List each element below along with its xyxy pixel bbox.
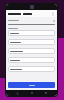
button[interactable]: Info [8, 19, 55, 22]
button[interactable]: Info [52, 19, 55, 22]
button[interactable] [8, 30, 55, 36]
button[interactable]: More options [6, 10, 57, 17]
button[interactable]: Back [14, 90, 20, 96]
button[interactable] [8, 48, 55, 54]
button[interactable] [8, 66, 55, 72]
button[interactable]: More options [50, 11, 55, 16]
button[interactable] [8, 39, 55, 45]
button[interactable] [8, 57, 55, 63]
button[interactable]: Home [29, 90, 35, 96]
button[interactable]: Recent apps [43, 90, 49, 96]
button[interactable] [8, 82, 55, 88]
